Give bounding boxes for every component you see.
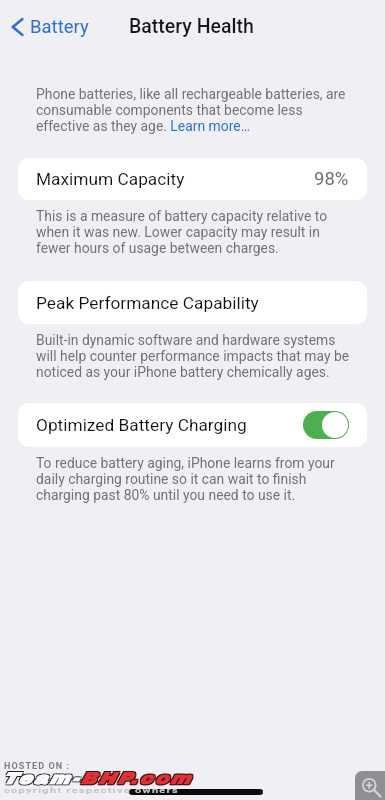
staticText: Peak Performance Capability: [36, 293, 259, 313]
staticText: copyright respective owners: [4, 786, 179, 795]
staticText: 98%: [314, 168, 349, 190]
staticText: Team-BHP.com: [1, 771, 192, 788]
staticText: Team-BHP.com: [2, 770, 193, 787]
staticText: To reduce battery aging, iPhone learns f…: [36, 455, 351, 503]
staticText: Maximum Capacity: [36, 169, 185, 189]
staticText: This is a measure of battery capacity re…: [36, 208, 351, 256]
button[interactable]: Battery: [7, 10, 93, 44]
button[interactable]: Peak Performance Capability: [18, 281, 367, 324]
staticText: Battery Health: [129, 15, 254, 38]
button[interactable]: Zoom in: [355, 771, 385, 800]
staticText: Battery: [30, 16, 89, 38]
button[interactable]: Maximum Capacity: [18, 158, 367, 200]
staticText: HOSTED ON :: [4, 761, 71, 772]
staticText: Team-BHP.com: [3, 771, 194, 788]
staticText: Optimized Battery Charging: [36, 415, 247, 435]
button[interactable]: Optimized Battery Charging, on: [303, 411, 349, 439]
staticText: Built-in dynamic software and hardware s…: [36, 332, 351, 380]
staticText: Team-BHP.com: [3, 769, 194, 786]
staticText: Team-BHP.com: [1, 769, 192, 786]
staticText: Phone batteries, like all rechargeable b…: [36, 86, 351, 134]
